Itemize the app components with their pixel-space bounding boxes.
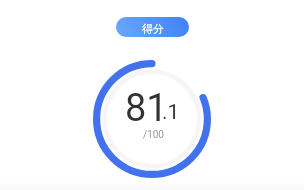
- staticText: /100: [143, 129, 164, 141]
- button[interactable]: 得分: [116, 17, 189, 37]
- staticText: 得分: [142, 22, 164, 36]
- staticText: .1: [162, 100, 180, 125]
- staticText: 81: [125, 86, 168, 131]
- other: Score ring 81.1 out of 100: [92, 59, 212, 179]
